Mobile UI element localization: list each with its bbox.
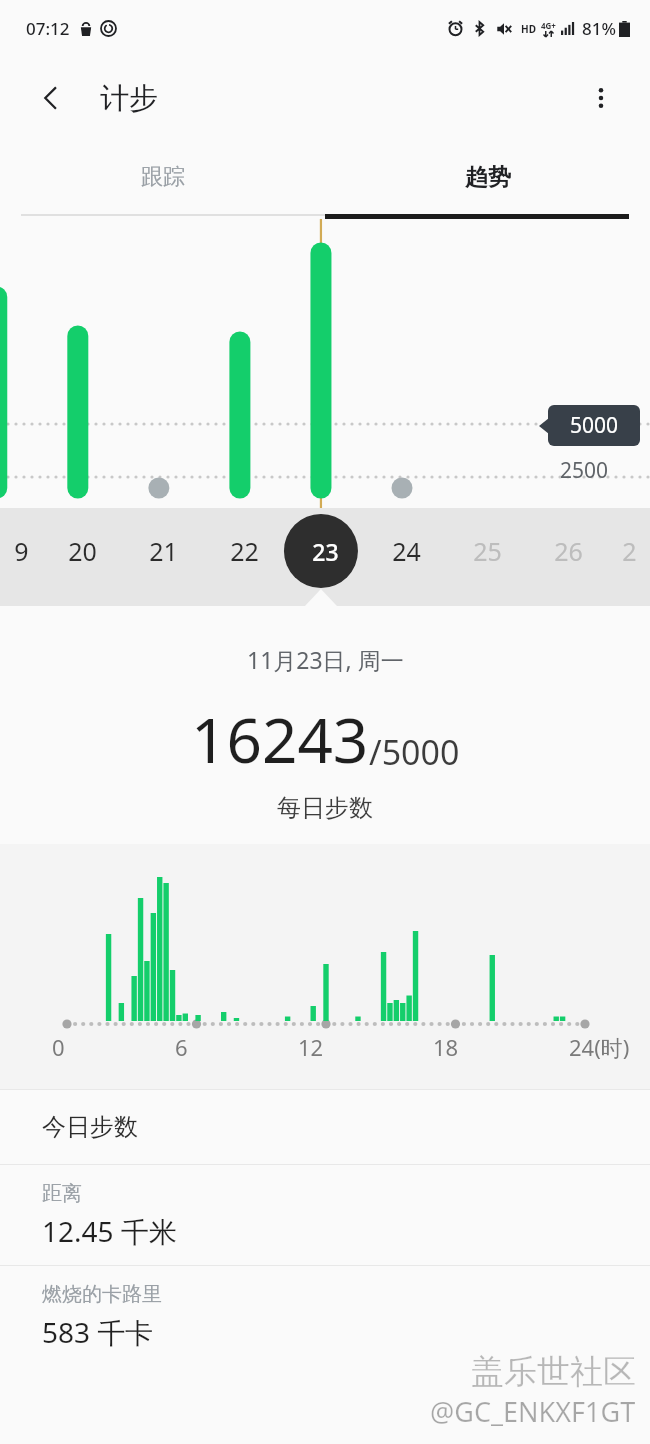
button[interactable]: 今日步数 xyxy=(0,1090,650,1164)
staticText: 20 xyxy=(68,534,97,568)
staticText: 583 千卡 xyxy=(42,1313,154,1351)
staticText: 9 xyxy=(14,534,29,568)
button[interactable]: 25 xyxy=(447,508,528,594)
staticText: 跟踪 xyxy=(141,163,185,191)
staticText: 81% xyxy=(582,17,616,40)
staticText: 每日步数 xyxy=(277,793,373,823)
staticText: @GC_ENKXF1GT xyxy=(430,1393,636,1430)
staticText: 25 xyxy=(473,534,502,568)
button[interactable]: 21 xyxy=(123,508,204,594)
staticText: 11月23日, 周一 xyxy=(247,644,404,675)
staticText: 2 xyxy=(622,534,637,568)
staticText: /5000 xyxy=(369,729,460,775)
staticText: 4G+ xyxy=(541,20,556,31)
staticText: 07:12 xyxy=(26,17,70,40)
staticText: 12 xyxy=(298,1032,324,1062)
staticText: 22 xyxy=(230,534,259,568)
staticText: 今日步数 xyxy=(42,1112,138,1142)
staticText: 21 xyxy=(149,534,178,568)
button[interactable]: 燃烧的卡路里 xyxy=(0,1266,650,1366)
button[interactable]: 跟踪 xyxy=(0,140,325,214)
staticText: 2500 xyxy=(560,456,609,485)
button[interactable]: 23 xyxy=(285,508,366,594)
button[interactable]: 26 xyxy=(528,508,609,594)
staticText: 18 xyxy=(433,1032,459,1062)
staticText: 26 xyxy=(554,534,583,568)
staticText: 趋势 xyxy=(465,163,511,192)
staticText: 6 xyxy=(175,1032,188,1062)
button[interactable]: 2 xyxy=(609,508,650,594)
button[interactable]: Back xyxy=(28,75,74,121)
button[interactable]: More options xyxy=(578,75,624,121)
button[interactable]: 22 xyxy=(204,508,285,594)
button[interactable]: 24 xyxy=(366,508,447,594)
staticText: 24 xyxy=(392,534,421,568)
staticText: 16243 xyxy=(191,697,369,781)
staticText: 距离 xyxy=(42,1181,82,1206)
staticText: 5000 xyxy=(570,411,619,440)
button[interactable]: 9 xyxy=(0,508,42,594)
staticText: 计步 xyxy=(100,80,158,117)
staticText: 24(时) xyxy=(569,1032,630,1062)
button[interactable]: 距离 xyxy=(0,1165,650,1265)
button[interactable]: 趋势 xyxy=(325,140,650,214)
staticText: 盖乐世社区 xyxy=(471,1351,636,1393)
staticText: 23 xyxy=(312,536,339,567)
staticText: 0 xyxy=(52,1032,65,1062)
staticText: 燃烧的卡路里 xyxy=(42,1282,162,1307)
staticText: HD xyxy=(521,22,536,36)
button[interactable]: 20 xyxy=(42,508,123,594)
staticText: 12.45 千米 xyxy=(42,1212,177,1250)
